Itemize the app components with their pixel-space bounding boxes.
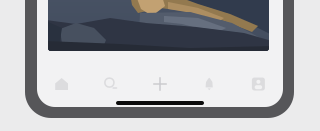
button[interactable]: Create: [135, 73, 185, 95]
button[interactable]: Search: [86, 73, 135, 95]
button[interactable]: Notifications: [185, 73, 234, 95]
button[interactable]: Profile: [234, 73, 283, 95]
button[interactable]: Home: [37, 73, 86, 95]
